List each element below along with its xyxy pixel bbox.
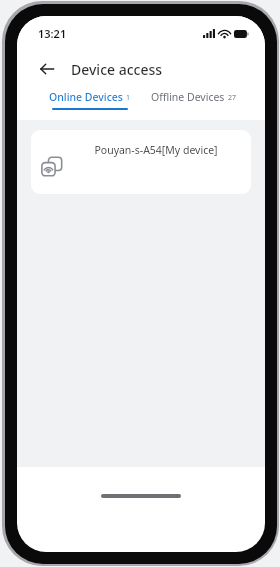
- staticText: 27: [228, 93, 237, 103]
- staticText: Online Devices: [49, 90, 123, 104]
- button[interactable]: Pouyan-s-A54[My device]: [31, 130, 251, 194]
- staticText: 1: [126, 93, 131, 103]
- staticText: Device access: [71, 60, 163, 79]
- staticText: Offline Devices: [151, 90, 225, 104]
- staticText: Pouyan-s-A54[My device]: [71, 143, 241, 157]
- button[interactable]: Online Devices: [47, 90, 133, 110]
- button[interactable]: Offline Devices: [149, 90, 239, 104]
- staticText: 13:21: [38, 26, 67, 41]
- button[interactable]: Back: [35, 57, 59, 81]
